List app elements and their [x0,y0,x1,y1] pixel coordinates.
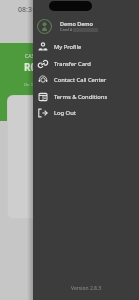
staticText: R0.00 [24,60,51,74]
staticText: Transfer Card [54,60,91,68]
staticText: Log Out [54,109,76,117]
button[interactable]: Contact Call Center [33,71,139,88]
staticText: On 12 Aug 2024 [24,82,54,87]
button[interactable]: My Profile [33,38,139,55]
staticText: Contact Call Center [54,76,107,84]
staticText: Version 2.8.3 [71,285,102,292]
staticText: Card # [60,27,73,32]
staticText: CASH BALANCE [25,53,62,60]
button[interactable]: Transfer Card [33,55,139,72]
button[interactable]: Log Out [33,104,139,121]
staticText: My Profile [54,43,82,51]
staticText: Demo Demo [60,20,93,27]
button[interactable]: Demo Demo [33,14,139,38]
staticText: 08:31 [18,5,36,15]
staticText: Terms & Conditions [54,93,108,101]
button[interactable]: Terms & Conditions [33,88,139,105]
